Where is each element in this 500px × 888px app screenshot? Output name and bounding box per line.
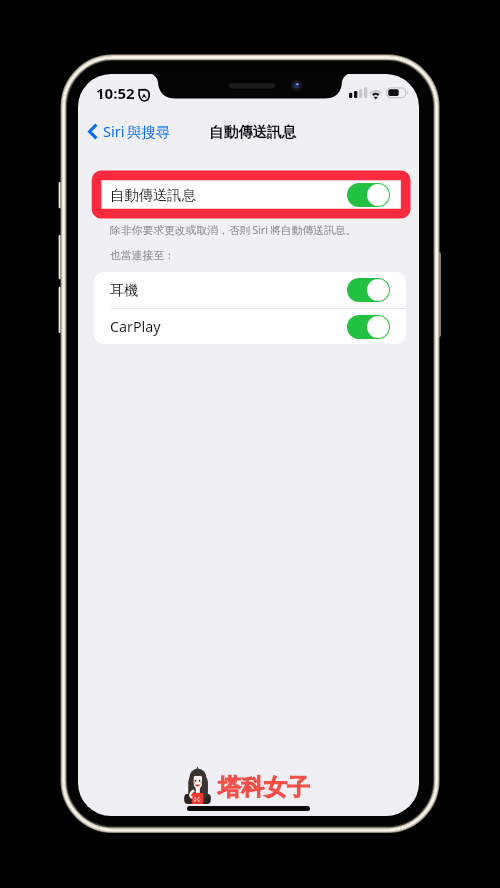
staticText: 耳機 bbox=[110, 281, 139, 299]
button[interactable]: 耳機 bbox=[94, 272, 406, 308]
staticText: CarPlay bbox=[110, 317, 161, 336]
staticText: 塔科女子 bbox=[218, 773, 310, 802]
staticText: 自動傳送訊息 bbox=[209, 123, 296, 141]
button[interactable]: 自動傳送訊息 bbox=[94, 172, 406, 218]
button[interactable]: Siri 與搜尋 bbox=[85, 117, 174, 145]
button[interactable]: Toggle switch, on bbox=[347, 278, 390, 302]
staticText: 除非你要求更改或取消，否則 Siri 將自動傳送訊息。 bbox=[110, 222, 357, 237]
staticText: 也當連接至： bbox=[110, 249, 175, 263]
button[interactable]: CarPlay bbox=[94, 309, 406, 344]
staticText: 自動傳送訊息 bbox=[110, 186, 196, 204]
staticText: Siri 與搜尋 bbox=[103, 121, 171, 141]
staticText: 10:52 bbox=[96, 83, 135, 103]
button[interactable]: Toggle switch, on bbox=[347, 315, 390, 339]
button[interactable]: Toggle switch, on bbox=[347, 183, 390, 207]
